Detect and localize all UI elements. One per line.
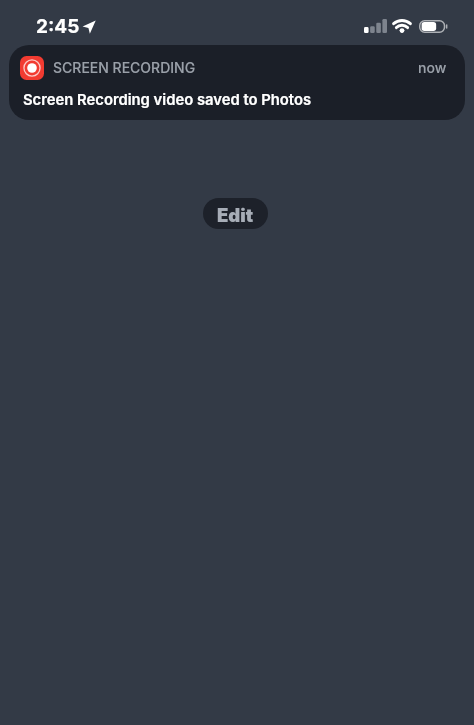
button[interactable]: Screen recording [9,45,465,120]
staticText: Edit [217,204,254,226]
staticText: now [418,59,447,76]
staticText: SCREEN RECORDING [53,59,196,76]
staticText: Screen Recording video saved to Photos [23,91,312,109]
other: Screen recording [20,56,44,80]
staticText: 2:45 [36,15,80,38]
button[interactable]: Edit [203,198,268,229]
other: Cellular, Wi-Fi and battery status [364,19,449,33]
